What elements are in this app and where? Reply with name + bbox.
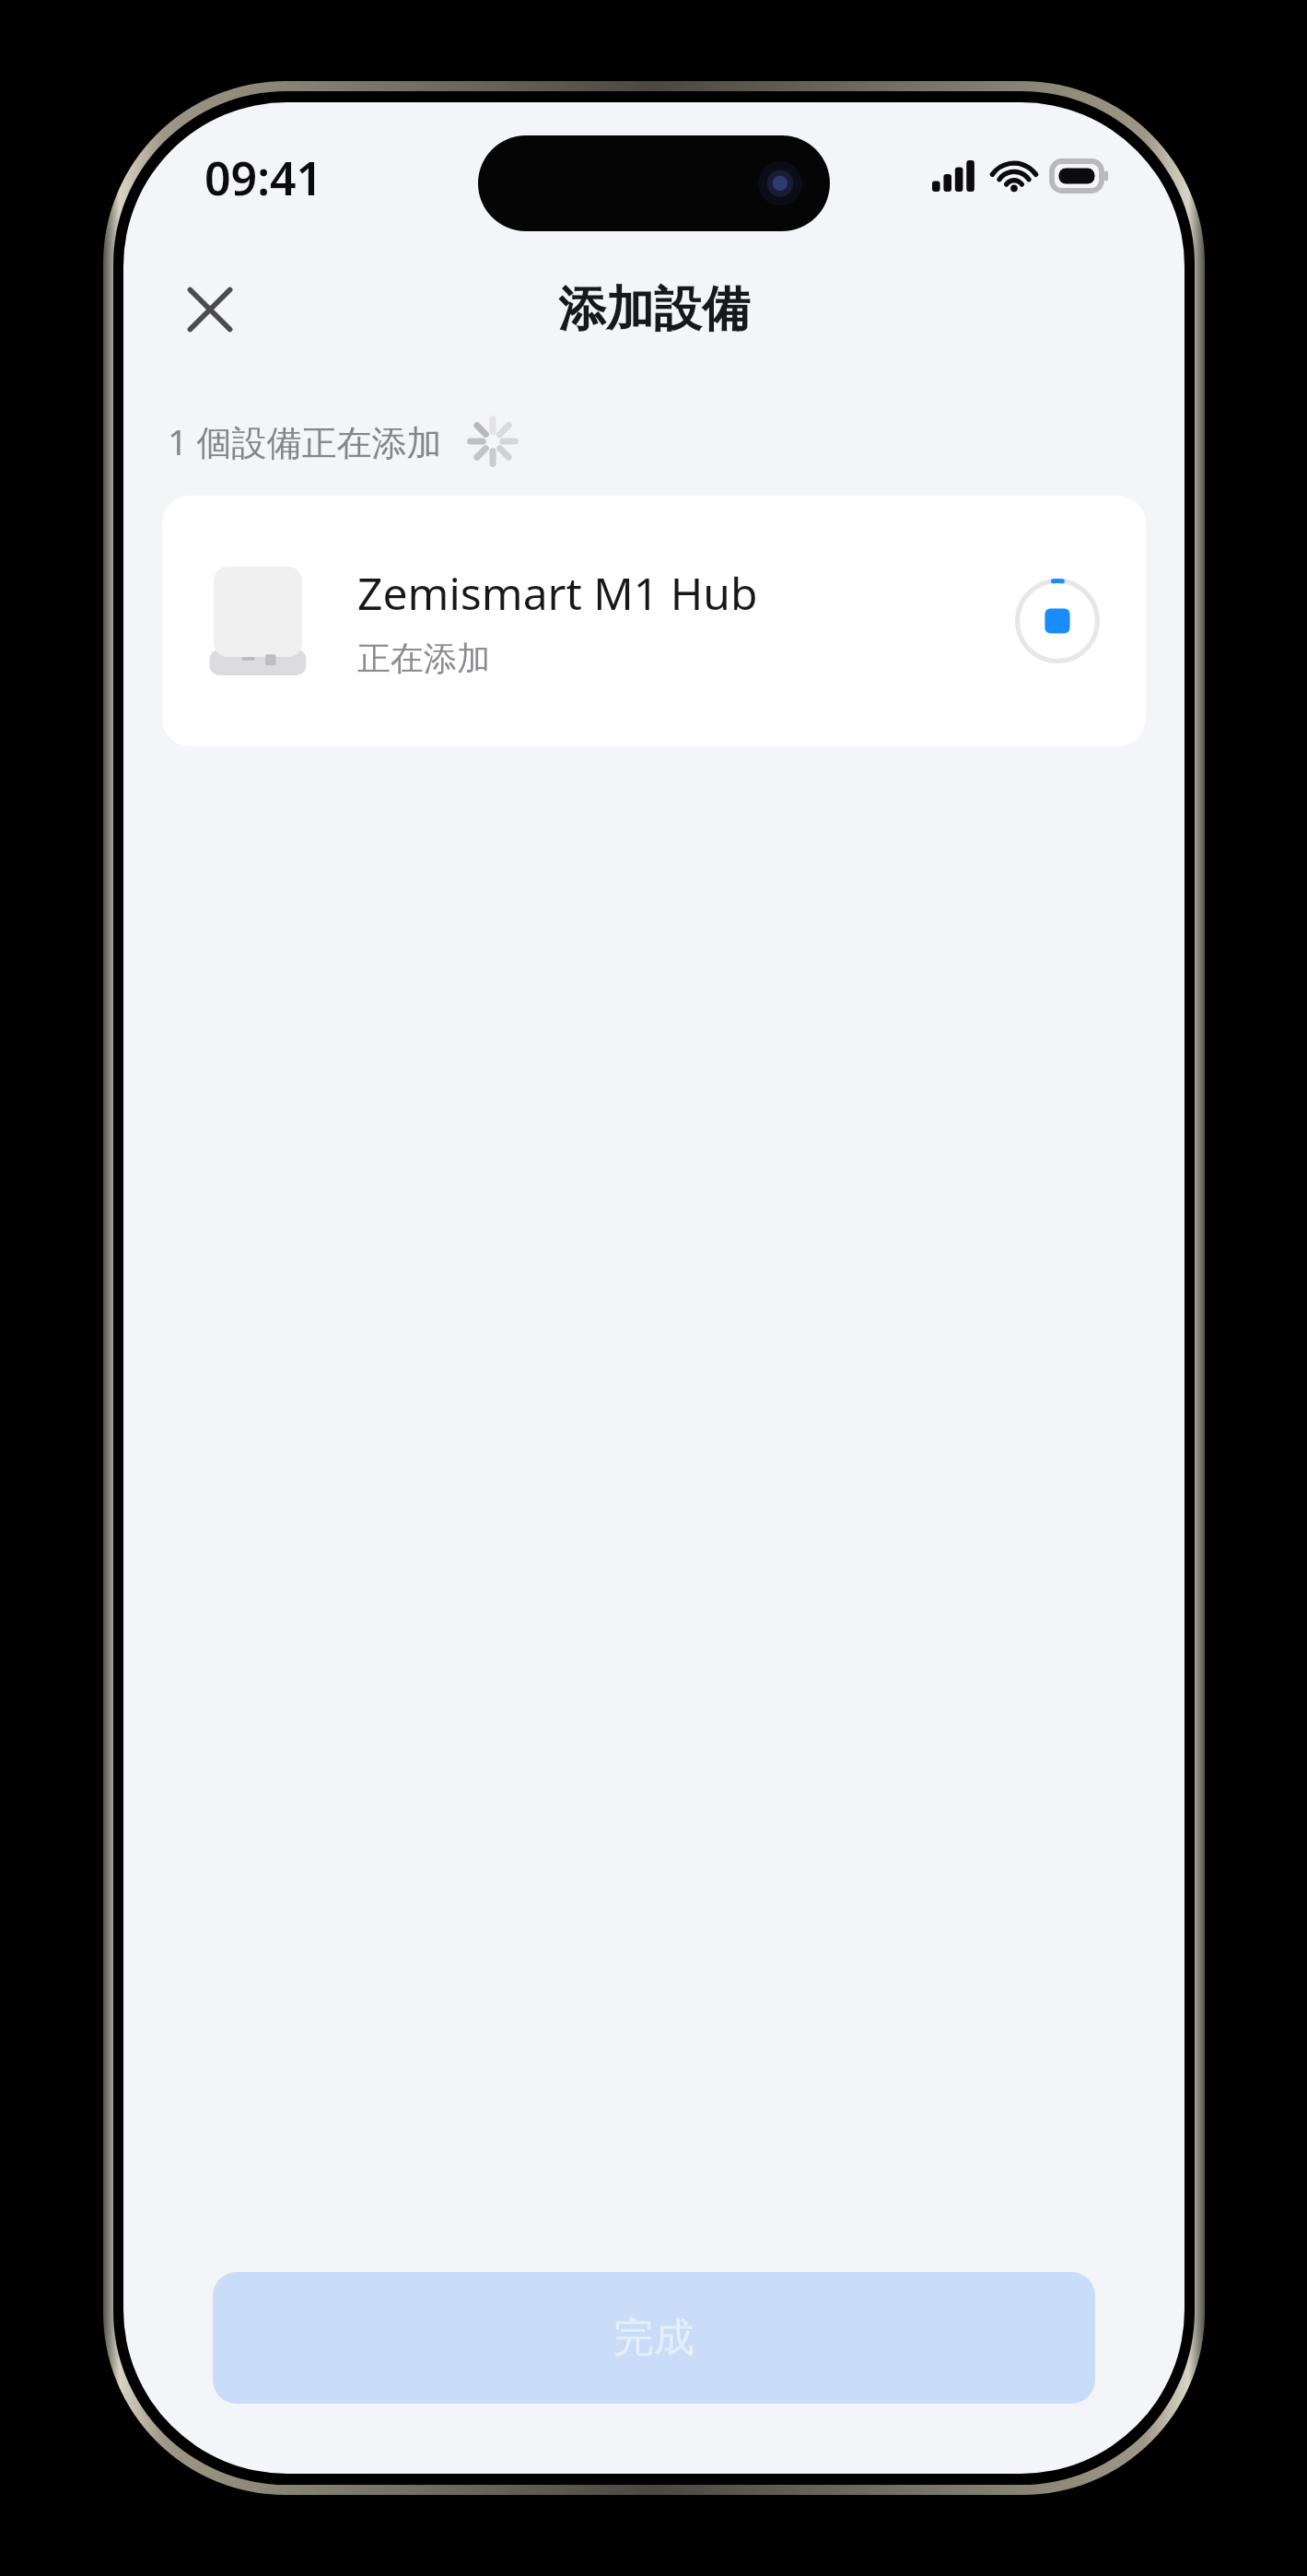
staticText: 完成 xyxy=(613,2313,694,2363)
button[interactable]: Stop adding xyxy=(1015,579,1100,663)
staticText: Zemismart M1 Hub xyxy=(357,563,758,623)
staticText: 09:41 xyxy=(204,146,323,209)
button[interactable]: 完成 xyxy=(213,2272,1095,2404)
button[interactable]: Close xyxy=(164,263,256,356)
staticText: 添加設備 xyxy=(558,279,750,340)
staticText: 正在添加 xyxy=(357,638,490,679)
staticText: 1 個設備正在添加 xyxy=(168,417,442,465)
button[interactable]: Zemismart M1 Hub xyxy=(162,496,1146,746)
